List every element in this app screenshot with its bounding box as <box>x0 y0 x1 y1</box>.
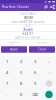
button[interactable]: 3 <box>28 56 42 67</box>
button[interactable]: 1 <box>0 56 14 67</box>
staticText: ⌫ <box>32 92 38 97</box>
button[interactable]: Share <box>49 3 56 11</box>
button[interactable]: 5 <box>14 67 28 78</box>
staticText: 4 <box>6 70 8 75</box>
staticText: . <box>6 92 7 97</box>
staticText: 8 <box>20 81 22 86</box>
button[interactable]: + <box>42 56 56 67</box>
staticText: Result <box>23 28 32 31</box>
button[interactable]: 8 <box>14 78 28 89</box>
staticText: 5 <box>20 70 22 75</box>
staticText: 9 <box>34 81 36 86</box>
staticText: 634.01 <box>22 32 33 35</box>
button[interactable]: 6 <box>28 67 42 78</box>
button[interactable]: ⌫ <box>28 89 42 100</box>
staticText: gallon per minute <box>15 36 41 39</box>
button[interactable]: Share <box>1 46 27 53</box>
staticText: 6 <box>34 70 36 75</box>
staticText: 1 <box>6 59 8 64</box>
staticText: 3 <box>34 59 36 64</box>
staticText: 2 <box>20 59 22 64</box>
staticText: 0.0 <box>25 24 30 28</box>
staticText: Input Value <box>19 12 36 15</box>
button[interactable]: Swap units <box>43 3 49 11</box>
staticText: cubic metre per second <box>11 20 44 24</box>
button[interactable]: Clear <box>29 46 55 53</box>
button[interactable]: 2 <box>14 56 28 67</box>
button[interactable]: Convert <box>42 89 56 100</box>
staticText: Share <box>10 48 18 51</box>
staticText: 0 <box>20 92 22 97</box>
staticText: Flow Rate Chooser <box>2 5 29 9</box>
button[interactable]: 4 <box>0 67 14 78</box>
staticText: cubic metre per second <box>8 41 19 45</box>
button[interactable]: 7 <box>0 78 14 89</box>
button[interactable]: Backspace <box>42 78 56 89</box>
button[interactable]: 0 <box>14 89 28 100</box>
staticText: Clear <box>38 48 46 51</box>
button[interactable]: 9 <box>28 78 42 89</box>
staticText: − <box>48 70 50 75</box>
staticText: 7 <box>6 81 8 86</box>
staticText: gallon per minute <box>36 42 47 44</box>
staticText: + <box>48 59 50 64</box>
staticText: 40.00 <box>23 15 32 20</box>
